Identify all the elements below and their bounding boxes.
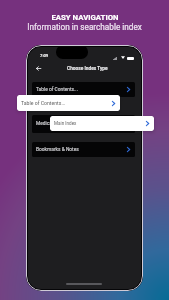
staticText: EASY NAVIGATION	[51, 13, 119, 22]
staticText: Bookmarks & Notes	[36, 147, 79, 153]
button[interactable]: Main Index	[50, 116, 154, 131]
staticText: Table of Contents...	[36, 87, 78, 93]
staticText: Medical Abbreviations	[36, 121, 84, 127]
staticText: Table of Contents...	[21, 100, 66, 106]
staticText: 7:09	[40, 53, 49, 58]
button[interactable]: Table of Contents...	[32, 82, 135, 97]
staticText: Main Index	[54, 121, 77, 126]
staticText: Choose Index Type	[67, 66, 108, 72]
staticText: Information in searchable index	[27, 22, 142, 32]
button[interactable]: Table of Contents...	[17, 95, 120, 111]
button[interactable]: Back	[36, 66, 41, 71]
button[interactable]: Bookmarks & Notes	[32, 142, 135, 157]
button[interactable]: Medical Abbreviations	[32, 115, 135, 133]
